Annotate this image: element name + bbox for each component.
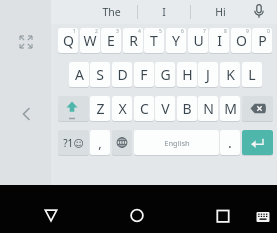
button[interactable]: English [134,130,219,155]
staticText: O [236,31,247,50]
button[interactable]: K [220,62,240,87]
button[interactable] [209,201,237,229]
button[interactable]: A [69,62,89,87]
staticText: N [203,99,214,118]
button[interactable]: The [85,0,137,24]
button[interactable]: X [112,96,132,121]
staticText: English [164,138,190,148]
staticText: 8 [224,28,227,35]
button[interactable]: J [198,62,218,87]
button[interactable]: O [231,28,251,53]
button[interactable] [242,96,273,121]
button[interactable] [248,1,270,23]
staticText: 2 [95,28,98,35]
button[interactable]: L [242,62,262,87]
staticText: J [206,65,210,84]
button[interactable] [112,130,132,155]
staticText: 7 [203,28,206,35]
button[interactable] [16,32,36,52]
button[interactable] [37,201,65,229]
button[interactable] [16,104,36,124]
button[interactable]: , [90,130,110,155]
button[interactable]: M [220,96,240,121]
button[interactable]: S [90,62,110,87]
button[interactable]: V [155,96,175,121]
staticText: L [248,65,256,84]
button[interactable]: U [188,28,208,53]
button[interactable]: D [112,62,132,87]
button[interactable]: ?1☺ [58,130,89,155]
button[interactable] [123,201,151,229]
staticText: P [258,31,267,50]
staticText: V [161,99,170,118]
staticText: U [193,31,204,50]
staticText: . [228,133,232,152]
staticText: A [75,65,84,84]
staticText: 3 [116,28,119,35]
staticText: , [98,134,102,152]
staticText: B [182,99,192,118]
staticText: H [182,65,193,84]
button[interactable]: C [134,96,154,121]
button[interactable]: W [80,28,100,53]
staticText: F [140,65,148,84]
button[interactable]: Q [58,28,78,53]
staticText: The [102,5,121,19]
button[interactable]: R [123,28,143,53]
staticText: S [96,65,104,84]
staticText: 6 [181,28,184,35]
button[interactable] [242,130,273,155]
staticText: Q [63,31,74,50]
button[interactable]: Y [166,28,186,53]
button[interactable] [58,96,89,121]
staticText: M [224,99,237,118]
button[interactable]: E [101,28,121,53]
button[interactable]: . [220,130,240,155]
button[interactable]: I [209,28,229,53]
button[interactable]: N [198,96,218,121]
staticText: Y [172,31,180,50]
staticText: W [83,31,97,50]
button[interactable]: P [252,28,272,53]
staticText: 0 [267,28,270,35]
staticText: C [140,99,149,118]
button[interactable]: Hi [191,0,249,24]
staticText: I [217,31,222,50]
staticText: E [107,31,115,50]
button[interactable]: F [134,62,154,87]
staticText: 4 [138,28,141,35]
staticText: Hi [215,5,226,19]
staticText: ?1☺ [63,136,84,150]
staticText: K [226,65,235,84]
staticText: 9 [246,28,249,35]
button[interactable]: I [138,0,190,24]
staticText: X [118,99,127,118]
staticText: Z [96,99,105,118]
staticText: 5 [159,28,162,35]
staticText: I [162,5,166,19]
staticText: T [150,31,158,50]
button[interactable]: T [144,28,164,53]
staticText: R [129,31,138,50]
staticText: G [160,65,171,84]
staticText: 1 [73,28,76,35]
staticText: D [117,65,128,84]
button[interactable] [249,201,277,229]
button[interactable]: H [177,62,197,87]
button[interactable]: G [155,62,175,87]
button[interactable]: B [177,96,197,121]
button[interactable]: Z [90,96,110,121]
